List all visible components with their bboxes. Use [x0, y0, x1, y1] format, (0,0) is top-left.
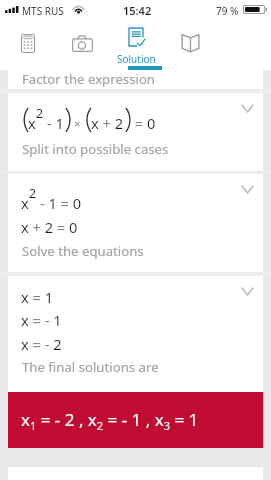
- staticText: 15:42: [123, 3, 152, 18]
- staticText: 79 %: [216, 4, 239, 18]
- button[interactable]: Solution: [110, 22, 162, 70]
- other: Collapse step: [242, 288, 253, 295]
- staticText: x = - 1: [21, 310, 62, 330]
- button[interactable]: Camera: [56, 22, 108, 70]
- staticText: x2 - 1 = 0: [21, 184, 82, 213]
- button[interactable]: Calculator: [2, 22, 54, 70]
- button[interactable]: x = 1: [8, 276, 263, 392]
- staticText: Factor the expression: [22, 70, 156, 88]
- button[interactable]: Library: [164, 22, 216, 70]
- staticText: Split into possible cases: [22, 140, 169, 158]
- staticText: = 0: [131, 113, 156, 133]
- staticText: MTS RUS: [22, 4, 64, 18]
- other: Collapse step: [242, 186, 253, 193]
- button[interactable]: x2 - 1: [8, 93, 263, 171]
- button[interactable]: x2 - 1 = 0: [8, 174, 263, 272]
- staticText: Solve the equations: [22, 242, 144, 260]
- staticText: x + 2 = 0: [21, 217, 78, 237]
- other: Collapse step: [242, 105, 253, 112]
- staticText: Solution: [117, 52, 156, 66]
- staticText: x = 1: [21, 287, 54, 307]
- staticText: x + 2: [91, 113, 124, 133]
- staticText: The final solutions are: [22, 358, 159, 376]
- staticText: ×: [71, 116, 84, 132]
- staticText: x1 = - 2 , x2 = - 1 , x3 = 1: [21, 408, 199, 433]
- staticText: x = - 2: [21, 334, 62, 354]
- staticText: x2 - 1: [28, 104, 64, 133]
